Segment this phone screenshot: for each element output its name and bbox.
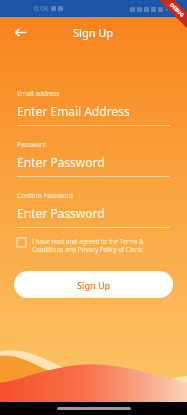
staticText: Password (17, 140, 47, 149)
staticText: Email address (17, 89, 60, 98)
staticText: DEBUG (168, 2, 186, 19)
button[interactable]: Sign Up (14, 271, 173, 298)
staticText: Enter Password (17, 154, 105, 170)
button[interactable]: Password (17, 140, 170, 177)
staticText: 97% (165, 5, 177, 13)
button[interactable]: Back (8, 20, 32, 44)
staticText: Confirm Password (17, 191, 73, 200)
button[interactable]: Confirm Password (17, 191, 170, 228)
staticText: 6:08 (34, 4, 48, 14)
staticText: Sign Up (73, 25, 114, 40)
staticText: Enter Password (17, 205, 105, 221)
button[interactable]: I have read and agreed to the Terms & Co… (17, 237, 170, 253)
staticText: Enter Email Address (17, 103, 130, 119)
button[interactable]: Email address (17, 89, 170, 126)
staticText: Sign Up (77, 279, 111, 291)
staticText: I have read and agreed to the Terms & Co… (32, 237, 170, 253)
